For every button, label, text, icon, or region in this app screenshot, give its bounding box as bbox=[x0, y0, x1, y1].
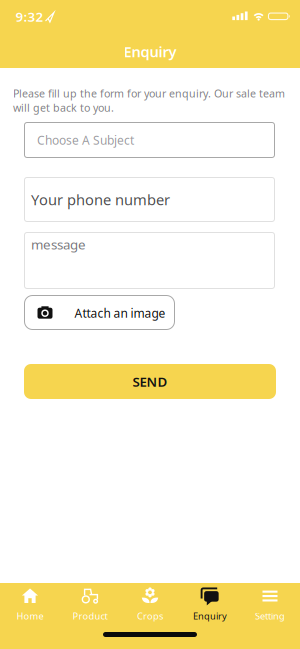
button[interactable]: Attach an image bbox=[24, 295, 175, 330]
staticText: 9:32 bbox=[15, 8, 43, 25]
staticText: Home bbox=[16, 610, 43, 622]
button[interactable]: Setting bbox=[240, 583, 300, 633]
staticText: Please fill up the form for your enquiry… bbox=[13, 86, 285, 115]
staticText: Attach an image bbox=[74, 305, 165, 321]
staticText: Your phone number bbox=[31, 190, 170, 209]
staticText: Product bbox=[72, 610, 107, 622]
staticText: Enquiry bbox=[123, 42, 176, 61]
staticText: message bbox=[31, 235, 86, 253]
button[interactable]: Enquiry bbox=[180, 583, 240, 633]
button[interactable]: Home bbox=[0, 583, 60, 633]
button[interactable]: Crops bbox=[120, 583, 180, 633]
staticText: Enquiry bbox=[193, 610, 227, 622]
staticText: Choose A Subject bbox=[37, 132, 134, 148]
staticText: Crops bbox=[137, 610, 163, 622]
button[interactable]: Choose A Subject bbox=[24, 122, 275, 158]
staticText: SEND bbox=[132, 373, 167, 390]
staticText: Setting bbox=[255, 610, 285, 622]
button[interactable]: SEND bbox=[24, 364, 276, 399]
button[interactable]: Product bbox=[60, 583, 120, 633]
